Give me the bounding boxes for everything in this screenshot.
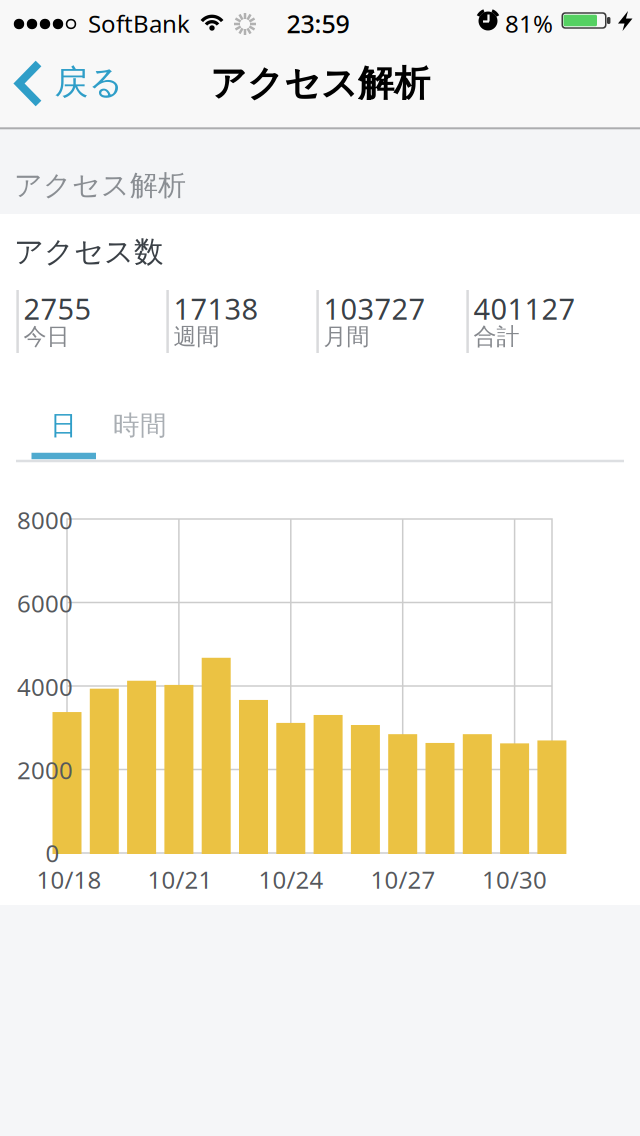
staticText: 日: [50, 409, 77, 442]
staticText: アクセス数: [14, 233, 164, 271]
button[interactable]: 時間: [100, 400, 180, 450]
staticText: 週間: [173, 322, 219, 351]
staticText: 81%: [505, 7, 553, 40]
staticText: 今日: [23, 322, 69, 351]
staticText: 401127: [473, 289, 575, 328]
staticText: 0: [45, 837, 59, 869]
button[interactable]: 戻る: [13, 61, 123, 105]
staticText: 4000: [17, 670, 73, 703]
button[interactable]: 日: [31, 400, 96, 450]
staticText: 10/18: [36, 863, 101, 896]
staticText: 合計: [473, 322, 519, 351]
staticText: 17138: [173, 289, 258, 328]
staticText: アクセス解析: [14, 168, 186, 203]
staticText: 時間: [113, 409, 167, 442]
staticText: アクセス解析: [210, 61, 430, 106]
staticText: 10/30: [482, 863, 547, 896]
staticText: 6000: [17, 587, 73, 620]
staticText: 2755: [23, 289, 91, 328]
staticText: 月間: [323, 322, 369, 351]
staticText: SoftBank: [88, 7, 190, 40]
staticText: 10/27: [370, 863, 435, 896]
staticText: 8000: [17, 504, 73, 536]
staticText: 10/21: [147, 863, 212, 896]
staticText: 23:59: [286, 6, 349, 40]
staticText: 戻る: [54, 61, 123, 104]
staticText: 103727: [323, 289, 425, 328]
staticText: 10/24: [258, 863, 323, 896]
staticText: 2000: [17, 754, 73, 786]
